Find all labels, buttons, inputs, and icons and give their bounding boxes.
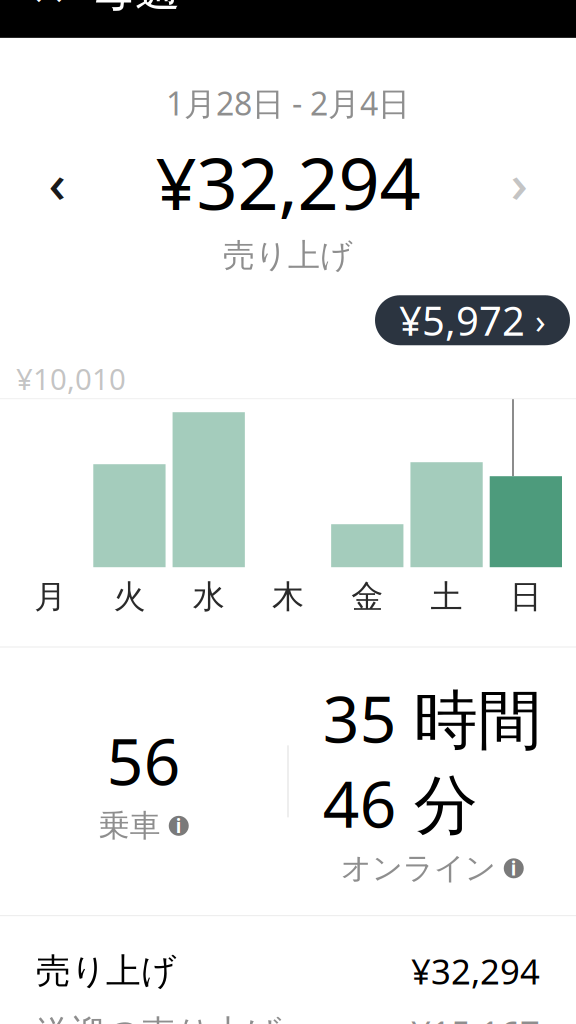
staticText: 乗車 bbox=[99, 807, 161, 845]
staticText: 金 bbox=[351, 577, 383, 616]
staticText: 木 bbox=[272, 577, 304, 616]
staticText: i bbox=[176, 813, 182, 838]
staticText: 火 bbox=[113, 577, 145, 616]
staticText: ¥10,010 bbox=[16, 359, 126, 398]
staticText: 売り上げ bbox=[36, 950, 176, 992]
staticText: ¥5,972 bbox=[399, 294, 525, 347]
staticText: › bbox=[535, 297, 546, 343]
button[interactable]: 送迎の売り上げ bbox=[0, 1002, 576, 1024]
staticText: 土 bbox=[431, 577, 463, 616]
staticText: ¥32,294 bbox=[411, 948, 540, 994]
staticText: 月 bbox=[34, 577, 66, 616]
button[interactable]: Previous week bbox=[22, 147, 92, 217]
staticText: 毎週 bbox=[90, 0, 180, 18]
button[interactable]: 売り上げ bbox=[0, 940, 576, 1002]
staticText: 1月28日 - 2月4日 bbox=[166, 82, 410, 124]
staticText: 送迎の売り上げ bbox=[36, 1012, 281, 1024]
button[interactable]: Close bbox=[22, 0, 76, 17]
staticText: › bbox=[510, 147, 527, 217]
staticText: ‹ bbox=[48, 147, 65, 217]
button[interactable]: ¥5,972 bbox=[375, 295, 570, 345]
staticText: 35 時間 46 分 bbox=[323, 675, 542, 845]
staticText: オンライン bbox=[341, 849, 496, 887]
staticText: ¥32,294 bbox=[155, 134, 420, 230]
staticText: ✕ bbox=[30, 0, 68, 16]
staticText: 56 bbox=[107, 718, 181, 803]
staticText: 水 bbox=[193, 577, 225, 616]
staticText: i bbox=[511, 856, 517, 881]
button[interactable]: Next week bbox=[484, 147, 554, 217]
staticText: 日 bbox=[510, 577, 542, 616]
staticText: ¥15,167 bbox=[411, 1010, 540, 1024]
staticText: 売り上げ bbox=[223, 236, 353, 275]
